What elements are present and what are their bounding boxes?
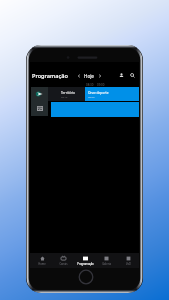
button[interactable]: Channel 1 <box>31 87 48 101</box>
staticText: 08:15 <box>61 95 68 98</box>
button[interactable]: Home <box>32 253 52 268</box>
button[interactable]: Onze deporte <box>85 87 139 101</box>
button[interactable]: Next day <box>96 70 103 81</box>
staticText: Galeria <box>102 262 111 266</box>
staticText: 09:00 <box>97 83 105 87</box>
staticText: 08:30 <box>86 83 94 87</box>
button[interactable]: Channel 2 <box>31 101 48 116</box>
staticText: Programação <box>32 72 68 80</box>
staticText: Home <box>38 262 46 266</box>
button[interactable]: Profile <box>116 70 126 80</box>
button[interactable]: Programação <box>32 70 68 81</box>
button[interactable]: Previous day <box>75 70 82 81</box>
button[interactable]: Programação <box>75 253 95 268</box>
staticText: Programação <box>77 262 94 266</box>
staticText: Canais <box>59 262 68 266</box>
button[interactable]: VoD <box>118 253 138 268</box>
button[interactable]: Território <box>58 87 85 101</box>
button[interactable]: Galeria <box>96 253 116 268</box>
staticText: Território <box>61 91 75 95</box>
staticText: 08:30 <box>88 95 95 98</box>
staticText: Onze deporte <box>88 91 109 95</box>
button[interactable]: Canais <box>53 253 73 268</box>
button[interactable]: Hoje <box>84 73 94 79</box>
button[interactable]: Search <box>127 70 137 80</box>
staticText: VoD <box>126 262 131 266</box>
